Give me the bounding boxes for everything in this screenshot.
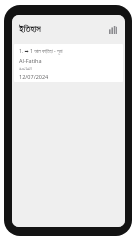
staticText: Al-Fatiha: [19, 57, 42, 64]
staticText: 1. ➡ 1 আল ফাতিহা - সূরা: [19, 48, 63, 55]
button[interactable]: 1. ➡ 1 আল ফাতিহা - সূরা: [14, 44, 123, 82]
staticText: ইতিহাস: [19, 25, 41, 34]
staticText: الفاتحة: [19, 66, 32, 71]
button[interactable]: Sort history: [106, 23, 120, 37]
staticText: 12/07/2024: [19, 73, 49, 79]
